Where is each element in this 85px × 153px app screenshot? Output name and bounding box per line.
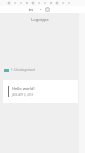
staticText: 1. Uncategorized bbox=[11, 68, 35, 72]
staticText: JANUARY 4, 2018 bbox=[12, 93, 34, 97]
staticText: Logotype bbox=[31, 17, 49, 22]
button[interactable]: Toolbar action 6 bbox=[42, 0, 48, 6]
button[interactable]: Toolbar action 9 bbox=[60, 0, 66, 6]
button[interactable]: Toolbar action 8 bbox=[54, 0, 60, 6]
button[interactable]: Toolbar action 2 bbox=[18, 0, 24, 6]
button[interactable]: Toolbar action 1 bbox=[12, 0, 18, 6]
button[interactable]: Hello world! bbox=[3, 80, 78, 103]
button[interactable]: Account bbox=[45, 7, 50, 12]
staticText: Hello world! bbox=[12, 86, 35, 91]
button[interactable]: Toolbar action 7 bbox=[48, 0, 54, 6]
staticText: in bbox=[29, 7, 33, 12]
button[interactable]: Toolbar action 5 bbox=[36, 0, 42, 6]
button[interactable]: Toolbar action 0 bbox=[6, 0, 12, 6]
button[interactable]: Toolbar action 3 bbox=[24, 0, 30, 6]
button[interactable]: Toolbar action 10 bbox=[66, 0, 72, 6]
button[interactable]: 1. Uncategorized bbox=[4, 67, 85, 73]
button[interactable]: Toolbar action 4 bbox=[30, 0, 36, 6]
